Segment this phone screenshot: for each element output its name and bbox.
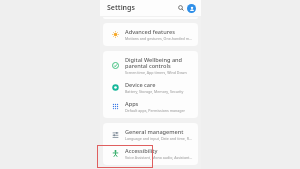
staticText: Motions and gestures, One-handed mode (125, 36, 193, 41)
staticText: Battery, Storage, Memory, Security (125, 89, 184, 94)
staticText: Screen time, App timers, Wind Down (125, 70, 187, 75)
button[interactable]: General management (103, 125, 198, 144)
staticText: Apps (125, 100, 139, 108)
staticText: Accessibility (125, 147, 158, 155)
staticText: Device care (125, 81, 156, 89)
button[interactable]: Search (176, 3, 186, 13)
button[interactable]: Device care (103, 78, 198, 97)
button[interactable]: Advanced features (103, 25, 198, 44)
button[interactable]: Account (187, 4, 196, 13)
staticText: Digital Wellbeing and parental controls (125, 56, 193, 70)
staticText: Advanced features (125, 28, 175, 36)
staticText: Language and input, Date and time, Reset (125, 136, 193, 141)
button[interactable]: Apps (103, 97, 198, 116)
staticText: Voice Assistant, Mono audio, Assistant m… (125, 155, 193, 160)
staticText: Settings (107, 3, 135, 13)
staticText: General management (125, 128, 184, 136)
button[interactable]: Accessibility (103, 144, 198, 163)
button[interactable]: Digital Wellbeing and parental controls (103, 53, 198, 78)
staticText: Default apps, Permissions manager (125, 108, 186, 113)
